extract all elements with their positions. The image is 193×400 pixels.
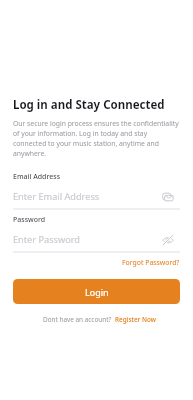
staticText: Enter Password — [13, 233, 162, 246]
staticText: Log in and Stay Connected — [13, 97, 165, 113]
button[interactable]: Forgot Password? — [122, 258, 180, 267]
button[interactable]: Show password — [162, 234, 174, 246]
button[interactable]: Register Now — [115, 315, 156, 324]
staticText: Login — [85, 286, 109, 298]
staticText: Dont have an account? — [43, 315, 112, 324]
button[interactable]: Login — [13, 279, 180, 304]
staticText: Our secure login process ensures the con… — [13, 119, 180, 158]
staticText: Email Address — [13, 172, 61, 182]
staticText: Enter Email Address — [13, 190, 162, 203]
button[interactable]: Email — [162, 191, 174, 203]
staticText: Password — [13, 215, 46, 225]
